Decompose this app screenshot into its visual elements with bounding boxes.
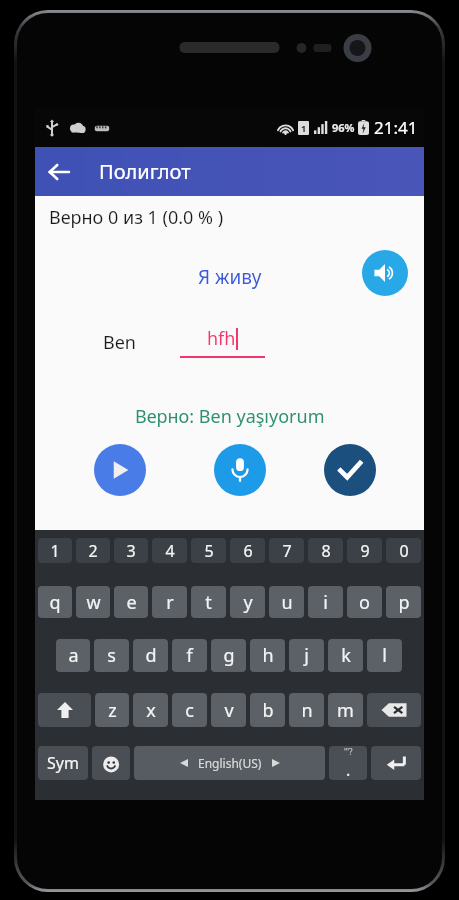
staticText: g	[223, 643, 235, 668]
button[interactable]: Backspace	[367, 693, 421, 727]
button[interactable]: h	[250, 639, 285, 672]
staticText: d	[145, 643, 157, 668]
staticText: 2	[88, 540, 98, 562]
staticText: Верно: Ben yaşıyorum	[135, 404, 325, 429]
button[interactable]: w	[76, 586, 110, 618]
staticText: f	[186, 643, 193, 668]
button[interactable]: e	[114, 586, 148, 618]
staticText: z	[108, 698, 117, 723]
staticText: m	[337, 698, 354, 723]
button[interactable]: Space	[134, 746, 325, 780]
button[interactable]: o	[347, 586, 382, 618]
staticText: Sym	[47, 752, 79, 774]
button[interactable]: Shift	[38, 693, 91, 727]
button[interactable]: d	[133, 639, 168, 672]
button[interactable]: l	[367, 639, 402, 672]
button[interactable]: y	[230, 586, 265, 618]
staticText: r	[166, 590, 174, 615]
staticText: s	[107, 643, 116, 668]
button[interactable]: 2	[76, 538, 110, 563]
staticText: Верно 0 из 1 (0.0 % )	[49, 205, 224, 230]
staticText: 8	[321, 540, 331, 562]
staticText: w	[86, 590, 101, 615]
button[interactable]: 0	[386, 538, 421, 563]
button[interactable]: p	[386, 586, 421, 618]
staticText: n	[301, 698, 313, 723]
staticText: 21:41	[374, 116, 418, 139]
button[interactable]: b	[250, 693, 285, 727]
button[interactable]: x	[133, 693, 168, 727]
staticText: 5	[204, 540, 214, 562]
staticText: 0	[399, 540, 409, 562]
staticText: e	[126, 590, 137, 615]
button[interactable]: 4	[152, 538, 187, 563]
staticText: Полиглот	[99, 158, 191, 185]
button[interactable]: 1	[38, 538, 72, 563]
button[interactable]: n	[289, 693, 324, 727]
button[interactable]: 8	[308, 538, 343, 563]
staticText: a	[68, 643, 79, 668]
staticText: English(US)	[198, 755, 262, 771]
button[interactable]: Play	[94, 444, 146, 496]
staticText: j	[304, 643, 309, 668]
button[interactable]: Speak	[362, 250, 408, 296]
button[interactable]: j	[289, 639, 324, 672]
staticText: '"?	[344, 746, 353, 757]
staticText: 6	[243, 540, 253, 562]
button[interactable]: 9	[347, 538, 382, 563]
staticText: hfh	[207, 326, 236, 351]
button[interactable]: s	[94, 639, 129, 672]
staticText: 7	[282, 540, 292, 562]
staticText: Ben	[103, 330, 136, 355]
staticText: v	[224, 698, 234, 723]
staticText: k	[341, 643, 351, 668]
button[interactable]: m	[328, 693, 363, 727]
staticText: 1	[301, 122, 307, 134]
button[interactable]: i	[308, 586, 343, 618]
button[interactable]: g	[211, 639, 246, 672]
staticText: 4	[165, 540, 175, 562]
button[interactable]: Period	[329, 746, 367, 780]
staticText: t	[205, 590, 212, 615]
button[interactable]: Emoji	[92, 746, 130, 780]
staticText: o	[359, 590, 370, 615]
staticText: 96%	[332, 120, 355, 135]
staticText: p	[398, 590, 410, 615]
button[interactable]: 3	[114, 538, 148, 563]
button[interactable]: Sym	[38, 746, 88, 780]
staticText: y	[243, 590, 253, 615]
button[interactable]: f	[172, 639, 207, 672]
staticText: u	[281, 590, 293, 615]
button[interactable]: Check answer	[324, 444, 376, 496]
button[interactable]: 7	[269, 538, 304, 563]
staticText: x	[146, 698, 156, 723]
staticText: .	[346, 759, 351, 780]
staticText: Я живу	[198, 264, 262, 290]
staticText: 9	[360, 540, 370, 562]
staticText: q	[49, 590, 61, 615]
button[interactable]: t	[191, 586, 226, 618]
staticText: h	[262, 643, 274, 668]
button[interactable]: Back	[35, 148, 83, 196]
button[interactable]: v	[211, 693, 246, 727]
button[interactable]: Enter	[371, 746, 421, 780]
button[interactable]: q	[38, 586, 72, 618]
button[interactable]: z	[95, 693, 129, 727]
staticText: c	[185, 698, 194, 723]
button[interactable]: c	[172, 693, 207, 727]
button[interactable]: r	[152, 586, 187, 618]
staticText: 3	[126, 540, 136, 562]
staticText: b	[262, 698, 274, 723]
button[interactable]: Microphone	[214, 444, 266, 496]
staticText: 1	[50, 540, 60, 562]
button[interactable]: a	[56, 639, 90, 672]
staticText: l	[382, 643, 387, 668]
button[interactable]: 6	[230, 538, 265, 563]
button[interactable]: 5	[191, 538, 226, 563]
button[interactable]: k	[328, 639, 363, 672]
staticText: i	[323, 590, 328, 615]
button[interactable]: u	[269, 586, 304, 618]
